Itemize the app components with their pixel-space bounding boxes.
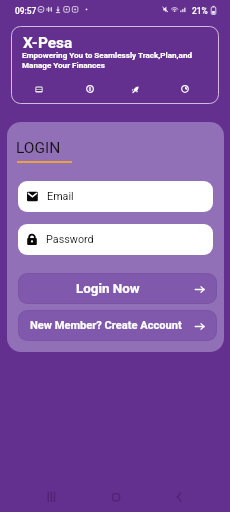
button[interactable]: New Member? Create Account — [18, 310, 217, 341]
staticText: Empowering You to Seamlessly Track,Plan,… — [22, 50, 192, 70]
button[interactable]: Invest — [124, 78, 146, 100]
button[interactable]: Money — [79, 78, 101, 100]
button[interactable]: Recent apps — [41, 487, 61, 507]
staticText: Email — [47, 190, 74, 203]
staticText: Login Now — [76, 281, 140, 297]
staticText: Password — [46, 233, 94, 246]
button[interactable]: Cards — [28, 78, 50, 100]
button[interactable]: Login Now — [18, 273, 217, 304]
staticText: New Member? Create Account — [30, 319, 182, 332]
button[interactable]: Home — [106, 487, 126, 507]
staticText: X-Pesa — [23, 34, 73, 52]
button[interactable]: History — [174, 78, 196, 100]
staticText: 21% — [192, 6, 208, 16]
staticText: 09:57 — [15, 6, 37, 16]
button[interactable]: Password — [18, 224, 213, 255]
staticText: LOGIN — [16, 139, 61, 157]
button[interactable]: Back — [169, 487, 189, 507]
button[interactable]: Email — [18, 181, 213, 212]
